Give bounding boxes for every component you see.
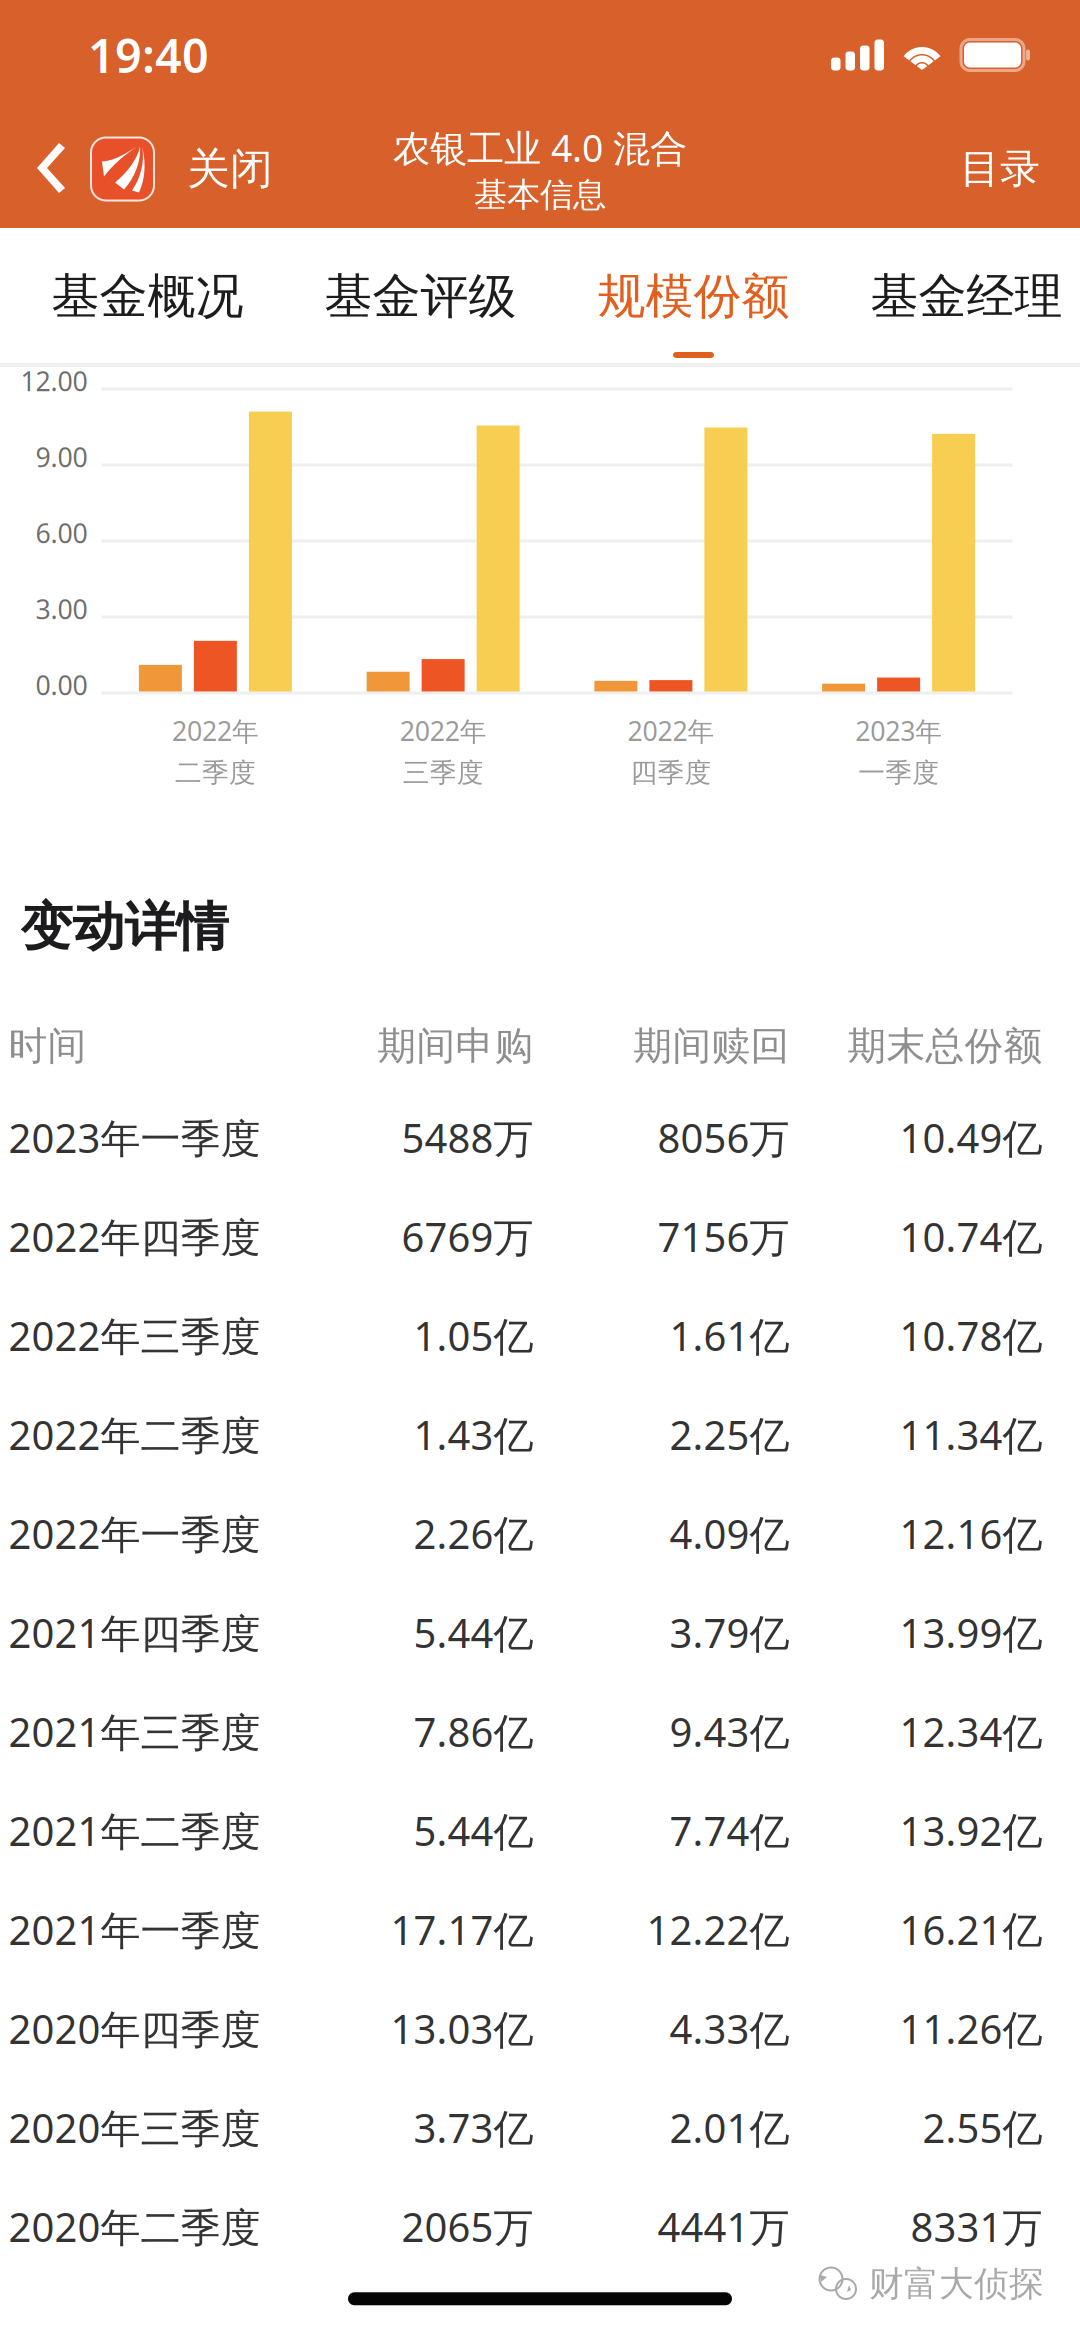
staticText: 2.26亿	[413, 1507, 533, 1560]
staticText: 12.16亿	[899, 1507, 1042, 1560]
staticText: 时间	[8, 1022, 86, 1070]
staticText: 2.25亿	[669, 1408, 789, 1461]
button[interactable]: 基金经理	[830, 228, 1080, 363]
staticText: 4441万	[657, 2200, 789, 2253]
staticText: 目录	[960, 144, 1040, 193]
staticText: 8331万	[910, 2200, 1042, 2253]
staticText: 2020年二季度	[8, 2200, 260, 2253]
staticText: 7156万	[657, 1210, 789, 1263]
staticText: 12.22亿	[646, 1903, 789, 1956]
button[interactable]: 目录	[920, 110, 1080, 228]
staticText: 11.26亿	[899, 2002, 1042, 2055]
staticText: 5.44亿	[413, 1804, 533, 1857]
staticText: 5.44亿	[413, 1606, 533, 1659]
staticText: 1.61亿	[669, 1309, 789, 1362]
staticText: 四季度	[630, 756, 711, 789]
staticText: 13.92亿	[899, 1804, 1042, 1857]
button[interactable]: 基金评级	[284, 228, 557, 363]
staticText: 19:40	[88, 24, 209, 86]
staticText: 2021年三季度	[8, 1705, 260, 1758]
staticText: 变动详情	[20, 895, 228, 959]
staticText: 8056万	[657, 1111, 789, 1164]
staticText: 7.74亿	[669, 1804, 789, 1857]
staticText: 基本信息	[474, 174, 606, 215]
staticText: 6.00	[35, 515, 87, 551]
staticText: 关闭	[187, 143, 273, 195]
staticText: 3.79亿	[669, 1606, 789, 1659]
staticText: 16.21亿	[899, 1903, 1042, 1956]
staticText: 基金评级	[324, 267, 516, 326]
staticText: 规模份额	[597, 267, 789, 326]
staticText: 1.43亿	[413, 1408, 533, 1461]
staticText: 二季度	[175, 756, 256, 789]
staticText: 10.78亿	[899, 1309, 1042, 1362]
staticText: 2022年一季度	[8, 1507, 260, 1560]
staticText: 2022年	[172, 713, 259, 748]
staticText: 0.00	[35, 667, 87, 703]
staticText: 农银工业 4.0 混合	[393, 123, 687, 172]
staticText: 期末总份额	[847, 1022, 1042, 1070]
staticText: 3.73亿	[413, 2101, 533, 2154]
staticText: 2022年	[627, 713, 714, 748]
staticText: 3.00	[35, 591, 87, 627]
staticText: 5488万	[401, 1111, 533, 1164]
staticText: 三季度	[403, 756, 484, 789]
staticText: 9.43亿	[669, 1705, 789, 1758]
staticText: 基金经理	[870, 267, 1062, 326]
button[interactable]: 规模份额	[557, 228, 830, 363]
staticText: 2065万	[401, 2200, 533, 2253]
staticText: 17.17亿	[390, 1903, 533, 1956]
button[interactable]: 关闭	[0, 110, 293, 228]
staticText: 4.33亿	[669, 2002, 789, 2055]
staticText: 财富大侦探	[869, 2263, 1044, 2305]
staticText: 7.86亿	[413, 1705, 533, 1758]
staticText: 基金概况	[51, 267, 243, 326]
staticText: 13.99亿	[899, 1606, 1042, 1659]
staticText: 4.09亿	[669, 1507, 789, 1560]
staticText: 2022年三季度	[8, 1309, 260, 1362]
staticText: 期间申购	[377, 1022, 533, 1070]
staticText: 2023年一季度	[8, 1111, 260, 1164]
staticText: 2021年二季度	[8, 1804, 260, 1857]
staticText: 2022年四季度	[8, 1210, 260, 1263]
staticText: 期间赎回	[633, 1022, 789, 1070]
staticText: 2020年四季度	[8, 2002, 260, 2055]
staticText: 2020年三季度	[8, 2101, 260, 2154]
staticText: 2021年一季度	[8, 1903, 260, 1956]
staticText: 2022年	[400, 713, 487, 748]
button[interactable]: 基金概况	[11, 228, 284, 363]
staticText: 2021年四季度	[8, 1606, 260, 1659]
staticText: 12.00	[20, 363, 87, 399]
staticText: 6769万	[401, 1210, 533, 1263]
staticText: 2022年二季度	[8, 1408, 260, 1461]
staticText: 2.55亿	[922, 2101, 1042, 2154]
staticText: 10.49亿	[899, 1111, 1042, 1164]
staticText: 1.05亿	[413, 1309, 533, 1362]
staticText: 10.74亿	[899, 1210, 1042, 1263]
staticText: 2.01亿	[669, 2101, 789, 2154]
staticText: 9.00	[35, 439, 87, 475]
staticText: 11.34亿	[899, 1408, 1042, 1461]
staticText: 12.34亿	[899, 1705, 1042, 1758]
staticText: 一季度	[858, 756, 939, 789]
staticText: 2023年	[855, 713, 942, 748]
staticText: 13.03亿	[390, 2002, 533, 2055]
